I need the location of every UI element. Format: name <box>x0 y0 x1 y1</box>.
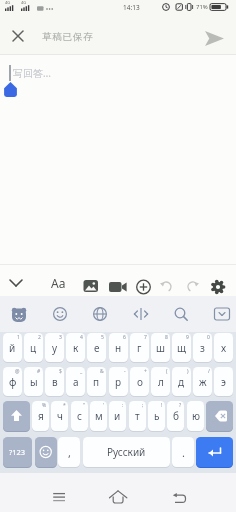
button[interactable]: с <box>71 401 88 431</box>
button[interactable]: х <box>214 333 233 362</box>
staticText: 6 <box>123 334 126 341</box>
staticText: н <box>115 341 122 355</box>
button[interactable]: о <box>130 367 149 396</box>
staticText: @ <box>15 368 20 375</box>
staticText: ? <box>179 402 182 409</box>
button[interactable]: ю <box>187 401 204 431</box>
button[interactable] <box>199 27 229 51</box>
staticText: п <box>93 375 100 389</box>
button[interactable] <box>7 25 29 47</box>
button[interactable] <box>196 437 233 467</box>
staticText: 14:13 <box>123 3 140 12</box>
button[interactable] <box>108 483 130 505</box>
staticText: 7 <box>144 334 147 341</box>
staticText: ь <box>154 409 160 423</box>
staticText: э <box>221 375 226 389</box>
button[interactable] <box>82 279 100 294</box>
staticText: ; <box>142 402 144 409</box>
button[interactable]: м <box>90 401 107 431</box>
button[interactable] <box>128 301 154 327</box>
button[interactable] <box>184 280 201 293</box>
staticText: е <box>94 341 100 355</box>
button[interactable]: ц <box>24 333 43 362</box>
button[interactable] <box>208 277 228 297</box>
button[interactable]: э <box>214 367 233 396</box>
button[interactable] <box>134 278 153 296</box>
button[interactable]: з <box>193 333 212 362</box>
staticText: + <box>144 368 147 375</box>
button[interactable]: ?123 <box>3 437 32 467</box>
staticText: з <box>200 341 205 355</box>
button[interactable]: ф <box>3 367 22 396</box>
staticText: ! <box>161 402 163 409</box>
button[interactable]: б <box>167 401 184 431</box>
button[interactable]: п <box>87 367 106 396</box>
button[interactable] <box>168 301 194 327</box>
button[interactable]: у <box>45 333 64 362</box>
staticText: ф <box>9 375 17 389</box>
button[interactable] <box>108 280 130 294</box>
button[interactable]: л <box>151 367 170 396</box>
button[interactable]: д <box>172 367 191 396</box>
button[interactable]: г <box>130 333 149 362</box>
staticText: 3 <box>59 334 62 341</box>
button[interactable]: ш <box>151 333 170 362</box>
staticText: Русский <box>107 445 146 459</box>
staticText: 4G <box>21 0 27 5</box>
staticText: 写回答… <box>13 66 51 80</box>
staticText: # <box>37 368 41 375</box>
staticText: _ <box>80 368 83 375</box>
button[interactable]: ь <box>148 401 165 431</box>
button[interactable] <box>6 274 26 292</box>
staticText: 1 <box>17 334 20 341</box>
staticText: у <box>52 341 58 355</box>
staticText: л <box>158 375 164 389</box>
staticText: ш <box>156 341 165 355</box>
button[interactable]: ы <box>24 367 43 396</box>
button[interactable] <box>3 401 30 431</box>
button[interactable]: я <box>32 401 49 431</box>
staticText: 2 <box>38 334 41 341</box>
button[interactable]: е <box>87 333 106 362</box>
button[interactable]: к <box>66 333 85 362</box>
button[interactable] <box>47 301 73 327</box>
button[interactable]: в <box>45 367 64 396</box>
button[interactable] <box>209 301 235 327</box>
staticText: ч <box>57 409 63 423</box>
button[interactable]: . <box>172 437 194 467</box>
button[interactable] <box>35 437 57 467</box>
staticText: а <box>73 375 79 389</box>
button[interactable]: а <box>66 367 85 396</box>
staticText: б <box>173 409 179 423</box>
button[interactable]: й <box>3 333 22 362</box>
staticText: р <box>115 375 122 389</box>
staticText: 8 <box>165 334 168 341</box>
button[interactable] <box>171 483 193 505</box>
staticText: ) <box>187 368 189 375</box>
button[interactable]: и <box>109 401 126 431</box>
staticText: Aa <box>51 275 66 291</box>
button[interactable]: Aa <box>46 274 70 292</box>
button[interactable]: р <box>109 367 128 396</box>
staticText: щ <box>177 341 186 355</box>
button[interactable]: Русский <box>83 437 170 467</box>
button[interactable] <box>6 303 32 329</box>
staticText: ?123 <box>9 447 26 457</box>
button[interactable] <box>47 483 69 505</box>
button[interactable]: ч <box>51 401 68 431</box>
button[interactable] <box>87 301 113 327</box>
staticText: ц <box>30 341 37 355</box>
button[interactable] <box>158 280 175 293</box>
staticText: - <box>124 368 126 375</box>
staticText: 草稿已保存 <box>42 31 94 43</box>
staticText: . <box>182 445 185 460</box>
button[interactable]: т <box>129 401 146 431</box>
staticText: 5 <box>101 334 104 341</box>
button[interactable]: , <box>58 437 80 467</box>
staticText: / <box>208 368 210 375</box>
button[interactable]: щ <box>172 333 191 362</box>
button[interactable]: ж <box>193 367 212 396</box>
button[interactable]: н <box>109 333 128 362</box>
button[interactable] <box>206 401 233 431</box>
staticText: о <box>137 375 143 389</box>
